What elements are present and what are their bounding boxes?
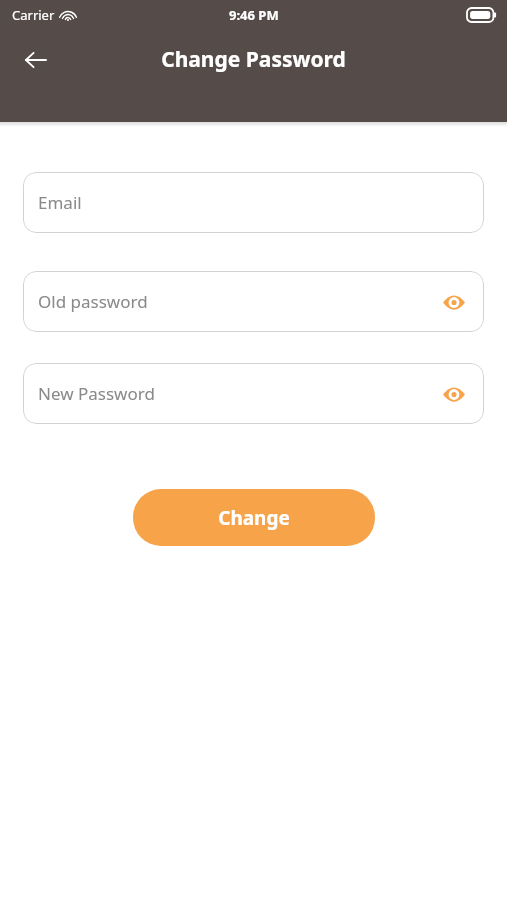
staticText: Email <box>38 191 82 214</box>
staticText: New Password <box>38 382 155 405</box>
staticText: Carrier <box>12 6 55 24</box>
button[interactable]: Toggle password visibility <box>438 378 470 410</box>
staticText: Change Password <box>161 45 346 74</box>
button[interactable]: Old password <box>23 271 484 332</box>
button[interactable]: Back <box>14 38 58 82</box>
staticText: 9:46 PM <box>229 6 279 24</box>
staticText: Change <box>218 505 290 531</box>
staticText: Old password <box>38 290 148 313</box>
button[interactable]: New Password <box>23 363 484 424</box>
button[interactable]: Change <box>133 489 375 546</box>
button[interactable]: Email <box>23 172 484 233</box>
button[interactable]: Toggle password visibility <box>438 286 470 318</box>
